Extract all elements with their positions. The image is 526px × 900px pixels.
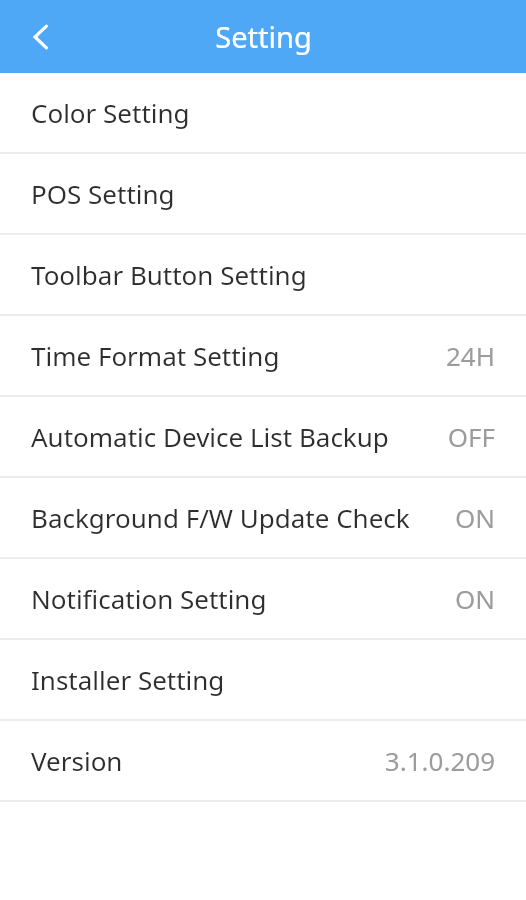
button[interactable]: Notification Setting (0, 559, 526, 638)
button[interactable]: Time Format Setting (0, 316, 526, 395)
button[interactable]: POS Setting (0, 154, 526, 233)
staticText: Notification Setting (31, 581, 267, 616)
button[interactable]: Back (10, 6, 72, 68)
staticText: Background F/W Update Check (31, 500, 410, 535)
staticText: ON (454, 500, 495, 535)
button[interactable]: Color Setting (0, 73, 526, 152)
staticText: ON (454, 581, 495, 616)
staticText: Color Setting (31, 95, 190, 130)
button[interactable]: Automatic Device List Backup (0, 397, 526, 476)
button[interactable]: Version (0, 721, 526, 800)
staticText: Setting (215, 17, 312, 56)
staticText: Installer Setting (31, 662, 225, 697)
staticText: Version (31, 743, 123, 778)
staticText: POS Setting (31, 176, 175, 211)
staticText: OFF (447, 419, 495, 454)
staticText: Time Format Setting (31, 338, 280, 373)
button[interactable]: Toolbar Button Setting (0, 235, 526, 314)
button[interactable]: Installer Setting (0, 640, 526, 719)
staticText: Toolbar Button Setting (31, 257, 307, 292)
button[interactable]: Background F/W Update Check (0, 478, 526, 557)
staticText: Automatic Device List Backup (31, 419, 389, 454)
staticText: 24H (445, 338, 495, 373)
staticText: 3.1.0.209 (384, 743, 495, 778)
